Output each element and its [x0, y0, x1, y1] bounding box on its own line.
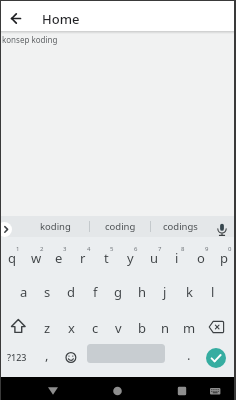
- button[interactable]: b: [130, 311, 154, 344]
- button[interactable]: m: [177, 311, 201, 344]
- staticText: p: [220, 249, 228, 267]
- button[interactable]: [60, 346, 82, 368]
- staticText: w: [31, 249, 42, 267]
- staticText: l: [211, 283, 215, 301]
- staticText: k: [186, 283, 193, 301]
- button[interactable]: g: [106, 275, 130, 309]
- staticText: 0: [228, 245, 232, 253]
- staticText: 6: [134, 245, 138, 253]
- button[interactable]: h: [130, 275, 154, 309]
- staticText: z: [44, 319, 51, 337]
- button[interactable]: k: [177, 275, 201, 309]
- button[interactable]: coding: [90, 216, 150, 237]
- button[interactable]: x: [59, 311, 83, 344]
- staticText: c: [92, 319, 99, 337]
- button[interactable]: r: [71, 241, 95, 274]
- staticText: 1: [16, 245, 20, 253]
- button[interactable]: [212, 216, 233, 237]
- staticText: 4: [87, 245, 91, 253]
- staticText: 7: [158, 245, 162, 253]
- button[interactable]: konsep koding: [2, 32, 232, 46]
- staticText: y: [127, 249, 134, 267]
- staticText: e: [55, 249, 63, 267]
- staticText: r: [80, 249, 86, 267]
- staticText: q: [8, 249, 16, 267]
- staticText: s: [44, 283, 51, 301]
- staticText: Home: [42, 10, 80, 28]
- staticText: n: [161, 319, 170, 337]
- button[interactable]: o: [189, 241, 213, 274]
- staticText: t: [104, 249, 109, 267]
- button[interactable]: ?123: [2, 346, 31, 368]
- button[interactable]: [105, 379, 130, 399]
- staticText: 5: [110, 245, 114, 253]
- button[interactable]: Home: [42, 6, 102, 32]
- staticText: d: [67, 283, 75, 301]
- button[interactable]: [6, 8, 26, 28]
- staticText: 2: [40, 245, 44, 253]
- button[interactable]: v: [106, 311, 130, 344]
- button[interactable]: q: [0, 241, 24, 274]
- staticText: x: [68, 319, 75, 337]
- staticText: 3: [63, 245, 67, 253]
- staticText: ?123: [7, 351, 27, 363]
- button[interactable]: [201, 311, 234, 343]
- staticText: i: [175, 249, 179, 267]
- staticText: ,: [45, 346, 49, 364]
- button[interactable]: y: [118, 241, 142, 274]
- button[interactable]: [203, 379, 227, 399]
- button[interactable]: [41, 379, 65, 399]
- button[interactable]: c: [83, 311, 107, 344]
- staticText: .: [187, 346, 191, 364]
- staticText: v: [115, 319, 122, 337]
- button[interactable]: n: [153, 311, 177, 344]
- button[interactable]: ,: [37, 343, 57, 367]
- button[interactable]: [206, 348, 226, 368]
- button[interactable]: d: [59, 275, 83, 309]
- button[interactable]: [2, 311, 35, 343]
- button[interactable]: .: [181, 343, 197, 367]
- staticText: g: [114, 283, 122, 301]
- button[interactable]: s: [35, 275, 59, 309]
- staticText: coding: [105, 220, 136, 233]
- button[interactable]: t: [94, 241, 118, 274]
- staticText: 8: [181, 245, 185, 253]
- button[interactable]: p: [212, 241, 236, 274]
- button[interactable]: a: [12, 275, 36, 309]
- staticText: 9: [205, 245, 209, 253]
- staticText: o: [197, 249, 205, 267]
- button[interactable]: i: [165, 241, 189, 274]
- button[interactable]: w: [24, 241, 48, 274]
- button[interactable]: codings: [151, 216, 209, 237]
- staticText: konsep koding: [2, 34, 58, 45]
- staticText: koding: [40, 220, 71, 233]
- button[interactable]: [170, 379, 194, 399]
- staticText: m: [183, 319, 196, 337]
- staticText: a: [20, 283, 28, 301]
- staticText: h: [138, 283, 147, 301]
- button[interactable]: koding: [22, 216, 89, 237]
- staticText: b: [138, 319, 146, 337]
- staticText: u: [150, 249, 159, 267]
- staticText: f: [93, 283, 98, 301]
- button[interactable]: f: [83, 275, 107, 309]
- staticText: codings: [163, 220, 198, 233]
- button[interactable]: z: [35, 311, 59, 344]
- button[interactable]: l: [201, 275, 225, 309]
- button[interactable]: [0, 222, 12, 237]
- button[interactable]: e: [47, 241, 71, 274]
- staticText: j: [163, 283, 167, 301]
- button[interactable]: j: [153, 275, 177, 309]
- button[interactable]: u: [142, 241, 166, 274]
